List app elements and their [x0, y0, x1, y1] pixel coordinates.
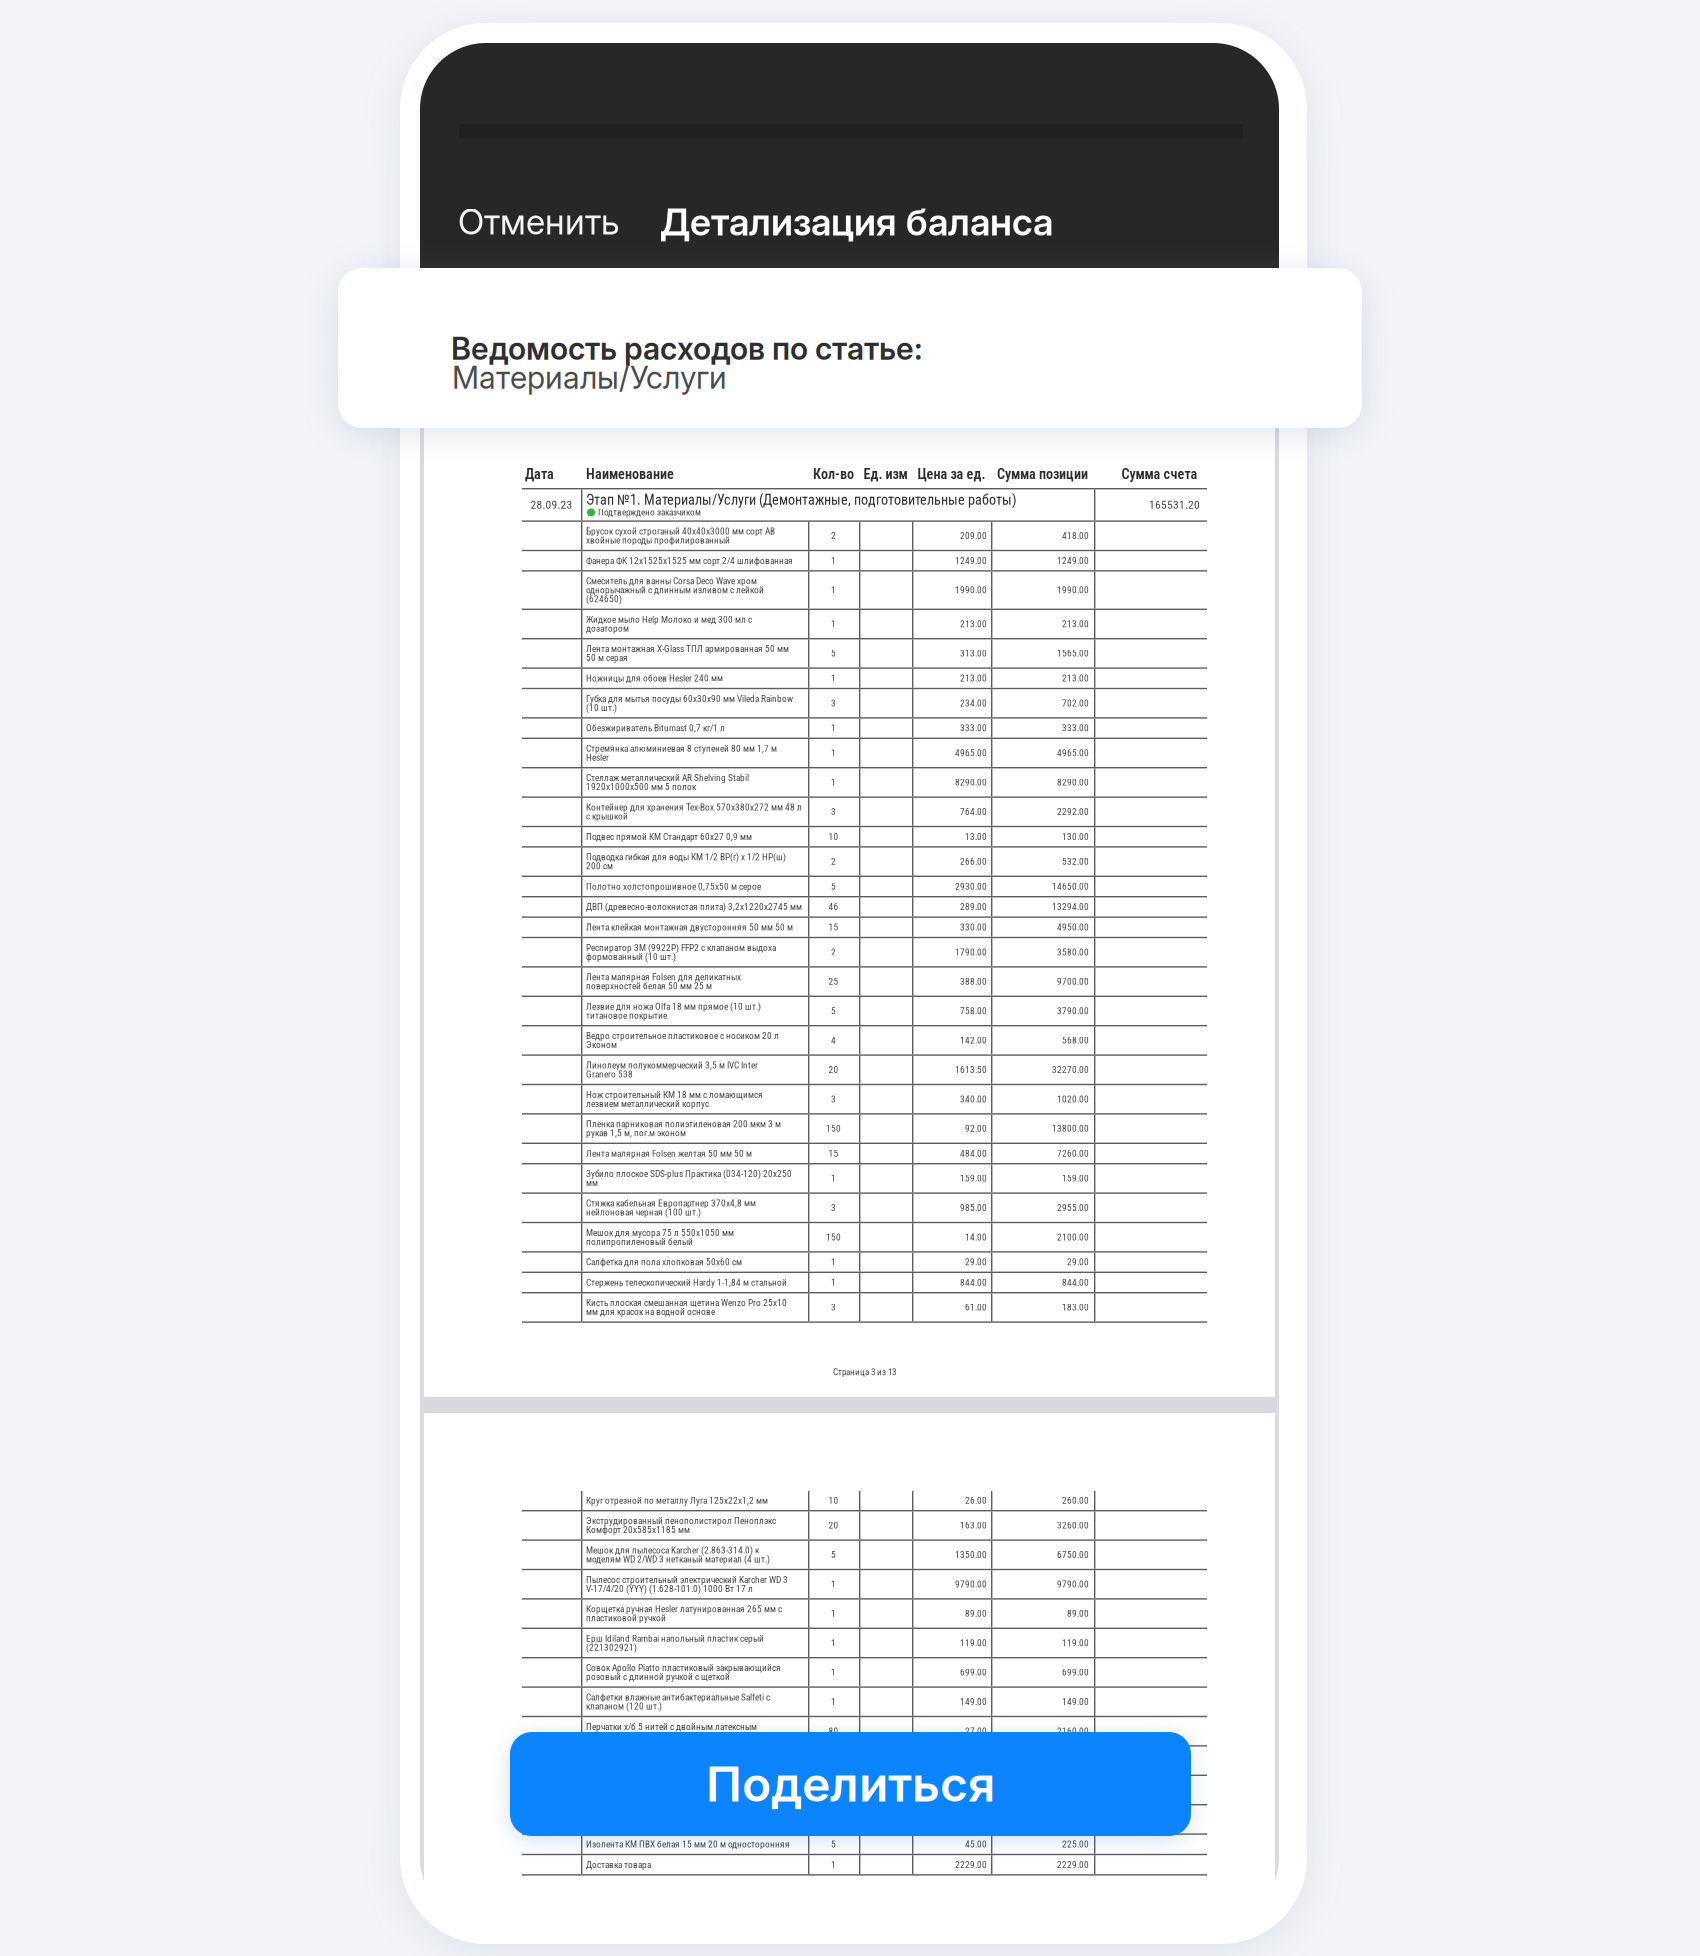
- staticText: 289.00: [960, 901, 987, 912]
- staticText: 2: [831, 856, 836, 867]
- staticText: 15: [828, 1148, 838, 1159]
- staticText: Стержень телескопический Hardy 1-1,84 м …: [586, 1277, 787, 1288]
- staticText: 1: [831, 1696, 836, 1707]
- staticText: 213.00: [960, 618, 987, 629]
- staticText: рукав 1,5 м, пог.м эконом: [586, 1128, 686, 1138]
- staticText: 1: [831, 1667, 836, 1678]
- staticText: Наименование: [586, 466, 674, 483]
- staticText: 3: [831, 806, 836, 817]
- staticText: 2930.00: [955, 881, 987, 892]
- staticText: 28.09.23: [530, 498, 572, 512]
- staticText: Детализация баланса: [660, 199, 1053, 245]
- staticText: лезвием металлический корпус: [586, 1098, 709, 1109]
- staticText: 27.00: [965, 1726, 987, 1737]
- staticText: 8290.00: [1057, 777, 1089, 788]
- staticText: Ерш Idiland Rambai напольный пластик сер…: [586, 1633, 764, 1644]
- staticText: 26.00: [965, 1495, 987, 1506]
- staticText: 15: [828, 922, 838, 933]
- staticText: 4950.00: [1057, 922, 1089, 933]
- staticText: Лента малярная Folsen для деликатных: [586, 972, 741, 982]
- staticText: 4: [831, 1035, 836, 1046]
- staticText: 2955.00: [1057, 1202, 1089, 1213]
- staticText: Подтверждено заказчиком: [598, 507, 701, 518]
- staticText: 165531.20: [1149, 498, 1200, 512]
- staticText: 340.00: [960, 1094, 987, 1105]
- staticText: 1020.00: [1057, 1094, 1089, 1105]
- staticText: 209.00: [960, 530, 987, 541]
- staticText: 25: [828, 976, 838, 987]
- staticText: 764.00: [960, 806, 987, 817]
- staticText: 119.00: [960, 1637, 987, 1648]
- staticText: 200 см: [586, 861, 613, 871]
- staticText: Валик малярный Wenzo Pro 180 мм ворс 12 …: [586, 1780, 778, 1791]
- staticText: 1249.00: [955, 555, 987, 566]
- staticText: 699.00: [960, 1667, 987, 1678]
- button[interactable]: Поделиться: [510, 1732, 1191, 1836]
- staticText: 9790.00: [955, 1579, 987, 1590]
- button[interactable]: Отменить: [420, 196, 660, 248]
- staticText: ДВП (древесно-волокнистая плита) 3,2x122…: [586, 901, 802, 912]
- staticText: Респиратор 3М (9922Р) FFP2 с клапаном вы…: [586, 942, 776, 953]
- staticText: 1990.00: [1057, 585, 1089, 595]
- staticText: клапаном (120 шт.): [586, 1701, 662, 1712]
- staticText: Стеллаж металлический AR Shelving Stabil: [586, 772, 749, 783]
- staticText: дозатором: [586, 623, 629, 634]
- staticText: моделям WD 2/WD 3 нетканый материал (4 ш…: [586, 1554, 770, 1565]
- staticText: 2100.00: [1057, 1232, 1089, 1243]
- staticText: Зубило плоское SDS-plus Практика (034-12…: [586, 1168, 792, 1179]
- staticText: Доставка товара: [586, 1859, 651, 1870]
- staticText: 1: [831, 1257, 836, 1267]
- staticText: 150: [826, 1123, 841, 1134]
- staticText: 10: [828, 1495, 838, 1506]
- staticText: Материалы/Услуги: [452, 359, 727, 396]
- staticText: 333.00: [1062, 723, 1089, 733]
- staticText: 333.00: [960, 723, 987, 733]
- staticText: 213.00: [960, 673, 987, 684]
- staticText: 3: [831, 1094, 836, 1105]
- staticText: 80: [828, 1726, 838, 1737]
- staticText: 14650.00: [1052, 881, 1089, 892]
- staticText: Цена за ед.: [917, 466, 985, 483]
- staticText: Пылесос строительный электрический Karch…: [586, 1574, 788, 1585]
- staticText: Лезвие для ножа Olfa 18 мм прямое (10 шт…: [586, 1001, 761, 1012]
- staticText: Лента малярная Folsen желтая 50 мм 50 м: [586, 1148, 752, 1159]
- staticText: 532.00: [1062, 856, 1089, 867]
- staticText: Экструдированный пенополистирол Пеноплэк…: [586, 1515, 776, 1526]
- staticText: 2229.00: [955, 1859, 987, 1870]
- staticText: 1: [831, 585, 836, 595]
- staticText: Линолеум полукоммерческий 3,5 м IVC Inte…: [586, 1060, 758, 1071]
- staticText: 159.00: [1062, 1173, 1089, 1184]
- staticText: Комфорт 20x585x1185 мм: [586, 1524, 690, 1535]
- staticText: 234.00: [960, 698, 987, 709]
- staticText: Лента монтажная X-Glass ТПЛ армированная…: [586, 643, 789, 654]
- staticText: 313.00: [960, 648, 987, 659]
- staticText: 6750.00: [1057, 1549, 1089, 1560]
- staticText: 29.00: [965, 1257, 987, 1267]
- staticText: 9790.00: [1057, 1579, 1089, 1590]
- staticText: 89.00: [1067, 1608, 1089, 1619]
- staticText: Изолента КМ ПВХ белая 15 мм 20 м односто…: [586, 1839, 790, 1850]
- staticText: 1: [831, 1277, 836, 1288]
- staticText: 699.00: [1062, 1667, 1089, 1678]
- staticText: Мешок для пылесоса Karcher (2.863-314.0)…: [586, 1545, 759, 1556]
- staticText: Сумма позиции: [997, 466, 1088, 483]
- staticText: Поделиться: [706, 1755, 995, 1813]
- staticText: Пленка парниковая полиэтиленовая 200 мкм…: [586, 1119, 781, 1129]
- staticText: 1: [831, 618, 836, 629]
- staticText: 568.00: [1062, 1035, 1089, 1046]
- staticText: мм: [586, 1177, 598, 1188]
- staticText: 5: [831, 1839, 836, 1850]
- staticText: 7260.00: [1057, 1148, 1089, 1159]
- staticText: Кол-во: [813, 466, 854, 483]
- staticText: 2: [831, 947, 836, 958]
- staticText: 4965.00: [955, 747, 987, 758]
- staticText: 1565.00: [1057, 648, 1089, 659]
- staticText: 1990.00: [955, 585, 987, 595]
- staticText: поверхностей белая 50 мм 25 м: [586, 981, 712, 991]
- staticText: 149.00: [1062, 1696, 1089, 1707]
- staticText: Кисть плоская смешанная щетина Wenzo Pro…: [586, 1297, 787, 1308]
